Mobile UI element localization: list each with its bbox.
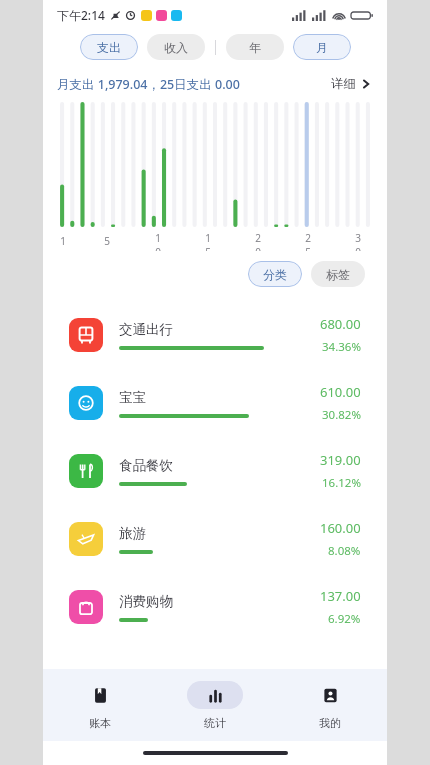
staticText: 137.00 [320, 587, 361, 605]
button[interactable]: 账本 [43, 669, 157, 741]
button[interactable]: 统计 [157, 669, 272, 741]
other: 我的 [302, 681, 358, 709]
staticText: 30.82% [322, 407, 361, 423]
button[interactable]: 分类 [248, 261, 302, 287]
staticText: 月 [316, 40, 328, 55]
staticText: 年 [249, 40, 261, 55]
button[interactable]: 宝宝 [43, 369, 387, 437]
button[interactable]: 收入 [147, 34, 205, 60]
staticText: 月支出 1,979.04，25日支出 0.00 [57, 76, 240, 93]
other: 统计 [187, 681, 243, 709]
staticText: 8.08% [328, 543, 361, 559]
staticText: 30 [353, 231, 363, 251]
staticText: 标签 [326, 267, 350, 282]
staticText: 10 [153, 231, 163, 251]
button[interactable]: 月 [293, 34, 351, 60]
staticText: 食品餐饮 [119, 457, 173, 474]
staticText: 16.12% [322, 475, 361, 491]
staticText: 610.00 [320, 383, 361, 401]
button[interactable]: 标签 [311, 261, 365, 287]
staticText: 交通出行 [119, 321, 173, 338]
staticText: 详细 [331, 76, 356, 92]
staticText: 账本 [89, 716, 111, 730]
staticText: 宝宝 [119, 389, 146, 406]
button[interactable]: 年 [226, 34, 284, 60]
button[interactable]: 食品餐饮 [43, 437, 387, 505]
staticText: 支出 [97, 40, 121, 55]
button[interactable]: 我的 [272, 669, 387, 741]
button[interactable]: 交通出行 [43, 301, 387, 369]
staticText: 旅游 [119, 525, 146, 542]
button[interactable]: 消费购物 [43, 573, 387, 641]
staticText: 15 [203, 231, 213, 251]
staticText: 1 [60, 234, 66, 248]
button[interactable]: 支出 [80, 34, 138, 60]
staticText: 34.36% [322, 339, 361, 355]
button[interactable]: 旅游 [43, 505, 387, 573]
staticText: 我的 [319, 716, 341, 730]
button[interactable]: 详细 [329, 74, 373, 94]
staticText: 160.00 [320, 519, 361, 537]
staticText: 分类 [263, 267, 287, 282]
staticText: 5 [104, 234, 110, 248]
staticText: 消费购物 [119, 593, 173, 610]
staticText: 6.92% [328, 611, 361, 627]
staticText: 收入 [164, 40, 188, 55]
staticText: 统计 [204, 716, 226, 730]
staticText: 319.00 [320, 451, 361, 469]
staticText: 20 [253, 231, 263, 251]
staticText: 下午2:14 [57, 7, 105, 23]
other: 账本 [72, 681, 128, 709]
staticText: 25 [303, 231, 313, 251]
staticText: 680.00 [320, 315, 361, 333]
